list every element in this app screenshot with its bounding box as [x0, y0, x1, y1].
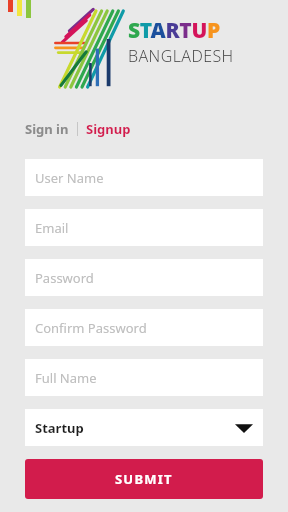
staticText: Confirm Password	[35, 319, 147, 337]
button[interactable]: Confirm Password	[25, 309, 263, 346]
staticText: Password	[35, 269, 94, 287]
staticText: STARTUP	[128, 16, 221, 45]
button[interactable]: Full Name	[25, 359, 263, 396]
staticText: Sign in	[25, 120, 69, 138]
button[interactable]: Startup	[25, 409, 263, 446]
staticText: Email	[35, 219, 69, 237]
staticText: Signup	[86, 120, 131, 138]
button[interactable]: Email	[25, 209, 263, 246]
other: Open dropdown	[235, 422, 253, 434]
staticText: Startup	[35, 419, 84, 437]
button[interactable]: Sign in	[25, 120, 69, 138]
button[interactable]: Signup	[86, 120, 131, 138]
staticText: BANGLADESH	[128, 45, 234, 67]
button[interactable]: Password	[25, 259, 263, 296]
button[interactable]: SUBMIT	[25, 459, 263, 499]
staticText: SUBMIT	[115, 470, 173, 488]
button[interactable]: User Name	[25, 159, 263, 196]
staticText: User Name	[35, 169, 104, 187]
staticText: Full Name	[35, 369, 97, 387]
